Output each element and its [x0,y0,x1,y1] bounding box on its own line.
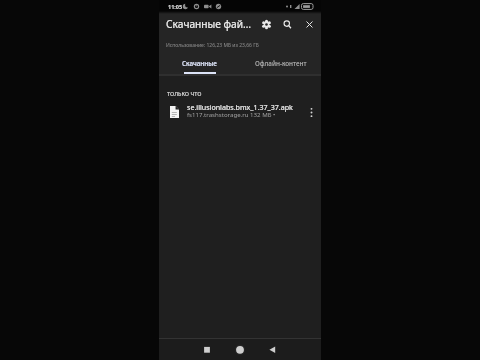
button[interactable]: Офлайн-контент [240,56,321,75]
button[interactable]: Скачанные [159,56,240,75]
staticText: 11:05 [168,3,183,10]
button[interactable]: Close [300,15,318,33]
button[interactable]: More options [304,105,318,119]
staticText: fs117.trashstorage.ru 132 МБ • [187,110,276,118]
staticText: se.illusionlabs.bmx_1.37_37.apk [187,102,293,112]
button[interactable]: Search [278,15,296,33]
staticText: Скачанные фай… [166,17,252,31]
staticText: Офлайн-контент [255,59,307,68]
button[interactable]: Recent apps [197,339,217,360]
button[interactable]: Settings [257,15,275,33]
button[interactable]: Back [263,339,283,360]
staticText: Скачанные [182,59,217,68]
staticText: ТОЛЬКО ЧТО [167,90,202,97]
button[interactable]: se.illusionlabs.bmx_1.37_37.apk [159,99,321,124]
staticText: Использование: 126,23 МБ из 23,66 ГБ [166,42,259,49]
button[interactable]: Home [230,339,250,360]
